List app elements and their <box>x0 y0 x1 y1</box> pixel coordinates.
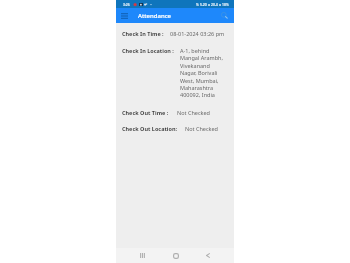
staticText: Nagar, Borivali <box>180 69 218 76</box>
button[interactable]: Search <box>219 10 230 21</box>
staticText: Not Checked <box>185 125 218 132</box>
staticText: Check Out Location: <box>122 125 178 132</box>
staticText: Vivekanand <box>180 62 210 69</box>
staticText: a <box>219 2 221 7</box>
staticText: a <box>208 2 210 7</box>
staticText: Check In Location : <box>122 47 174 54</box>
staticText: A-1, behind <box>180 47 210 54</box>
staticText: West, Mumbai, <box>180 77 219 84</box>
staticText: 3:26 <box>123 2 130 7</box>
button[interactable]: Home <box>169 249 182 262</box>
staticText: Not Checked <box>177 109 210 116</box>
staticText: 08-01-2024 03:26 pm <box>170 30 225 37</box>
staticText: Check In Time : <box>122 30 164 37</box>
staticText: Maharashtra <box>180 84 214 91</box>
staticText: 20.4 <box>211 2 218 7</box>
staticText: 400092, India <box>180 91 215 98</box>
staticText: Check Out Time : <box>122 109 169 116</box>
staticText: 5.20 <box>200 2 207 7</box>
button[interactable]: Open navigation menu <box>118 10 130 22</box>
staticText: Attendance <box>138 12 172 20</box>
button[interactable]: Back <box>201 249 214 262</box>
staticText: 18% <box>222 2 229 7</box>
staticText: Mangal Arambh, <box>180 54 223 61</box>
button[interactable]: Recent apps <box>136 249 149 262</box>
staticText: % <box>196 2 199 7</box>
